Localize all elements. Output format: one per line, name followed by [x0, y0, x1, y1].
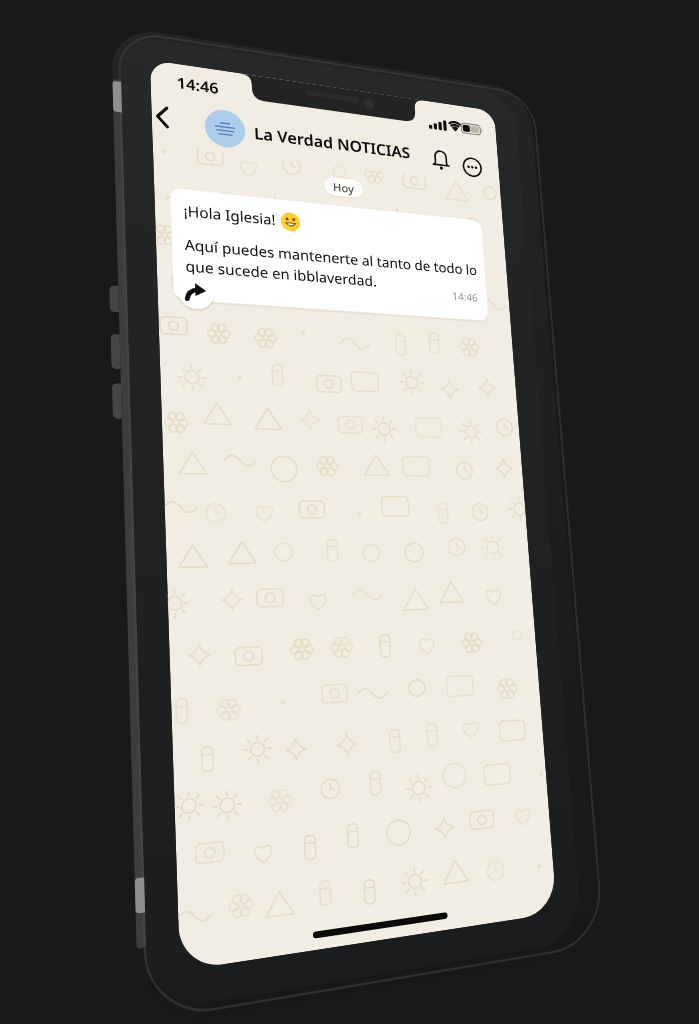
button[interactable]: [458, 152, 496, 190]
button[interactable]: [150, 100, 190, 140]
button[interactable]: [172, 185, 482, 305]
button[interactable]: [420, 140, 462, 182]
